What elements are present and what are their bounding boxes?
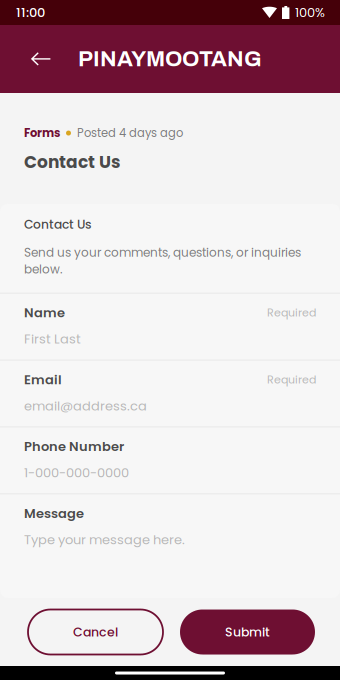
staticText: Cancel [73,623,118,641]
staticText: Send us your comments, questions, or inq… [24,244,301,278]
staticText: 11:00 [16,3,45,22]
button[interactable]: Cancel [28,609,163,654]
staticText: 100% [295,3,325,22]
staticText: Phone Number [24,437,124,456]
staticText: Forms [24,125,60,141]
button[interactable]: Submit [180,609,315,654]
staticText: email@address.ca [24,397,147,415]
staticText: Name [24,304,65,322]
staticText: Type your message here. [24,531,185,549]
staticText: 1-000-000-0000 [24,464,129,482]
button[interactable]: Back [21,37,61,81]
staticText: Message [24,504,84,523]
staticText: Email [24,370,62,389]
staticText: PINAYMOOTANG [78,47,262,71]
staticText: Contact Us [24,150,120,174]
staticText: Contact Us [24,216,92,233]
staticText: Required [267,372,316,387]
staticText: Required [267,305,316,320]
staticText: Posted 4 days ago [77,125,183,141]
staticText: First Last [24,330,81,348]
staticText: Submit [225,623,270,641]
